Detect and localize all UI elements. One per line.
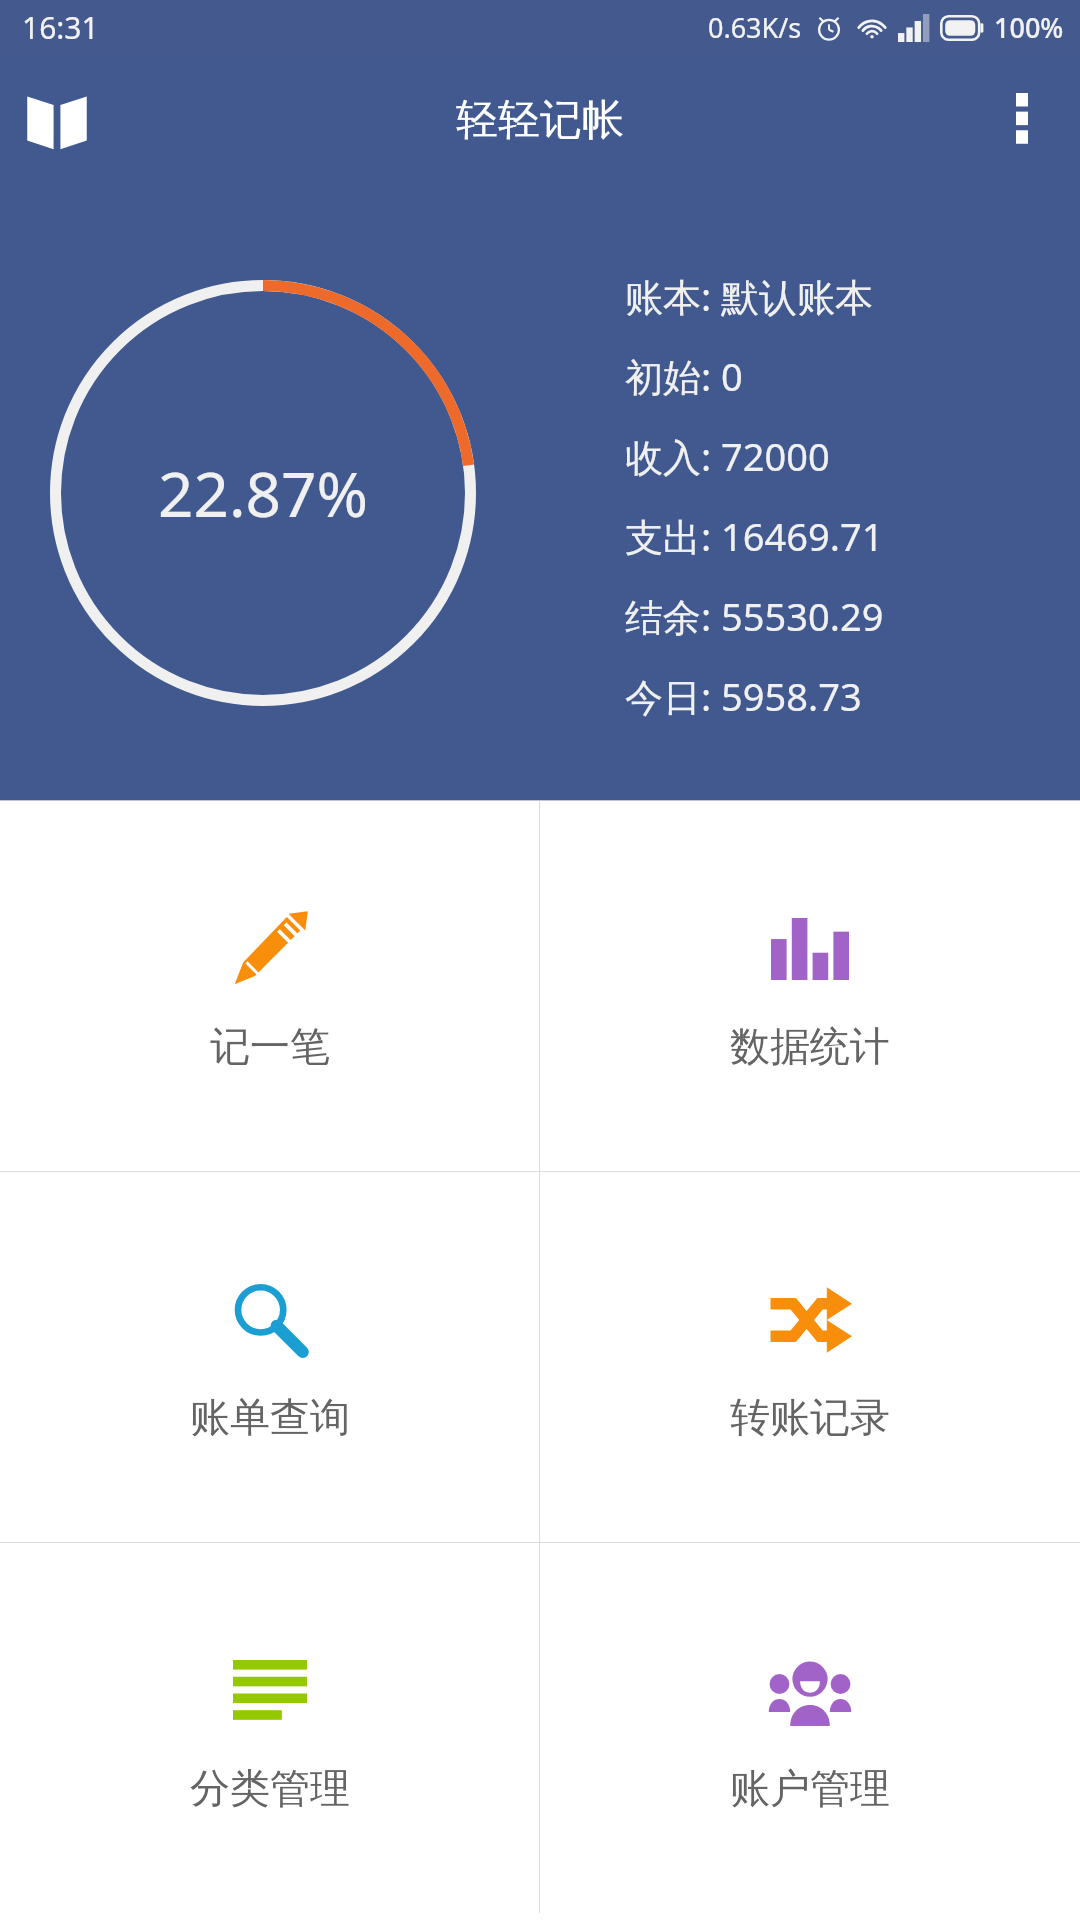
button[interactable]: 记一笔 — [0, 801, 539, 1171]
button[interactable]: 账单查询 — [0, 1172, 539, 1542]
staticText: 0.63K/s — [708, 9, 802, 46]
staticText: 记一笔 — [210, 1021, 330, 1071]
staticText: 支出: 16469.71 — [625, 510, 884, 562]
staticText: 收入: 72000 — [625, 430, 830, 482]
staticText: 初始: 0 — [625, 350, 743, 402]
staticText: 账本: 默认账本 — [625, 270, 874, 322]
staticText: 今日: 5958.73 — [625, 670, 862, 722]
staticText: 账单查询 — [190, 1392, 350, 1442]
staticText: 16:31 — [22, 7, 99, 48]
staticText: 100% — [994, 9, 1064, 46]
button[interactable]: 分类管理 — [0, 1543, 539, 1913]
staticText: 22.87% — [158, 451, 368, 535]
staticText: 数据统计 — [730, 1021, 890, 1071]
button[interactable]: More options — [982, 80, 1062, 160]
staticText: 账户管理 — [730, 1763, 890, 1813]
staticText: 分类管理 — [190, 1763, 350, 1813]
staticText: 转账记录 — [730, 1392, 890, 1442]
button[interactable]: 数据统计 — [540, 801, 1080, 1171]
button[interactable]: 转账记录 — [540, 1172, 1080, 1542]
button[interactable]: 账户管理 — [540, 1543, 1080, 1913]
button[interactable]: Account books — [14, 77, 100, 163]
staticText: 轻轻记帐 — [456, 94, 624, 147]
staticText: 结余: 55530.29 — [625, 590, 884, 642]
